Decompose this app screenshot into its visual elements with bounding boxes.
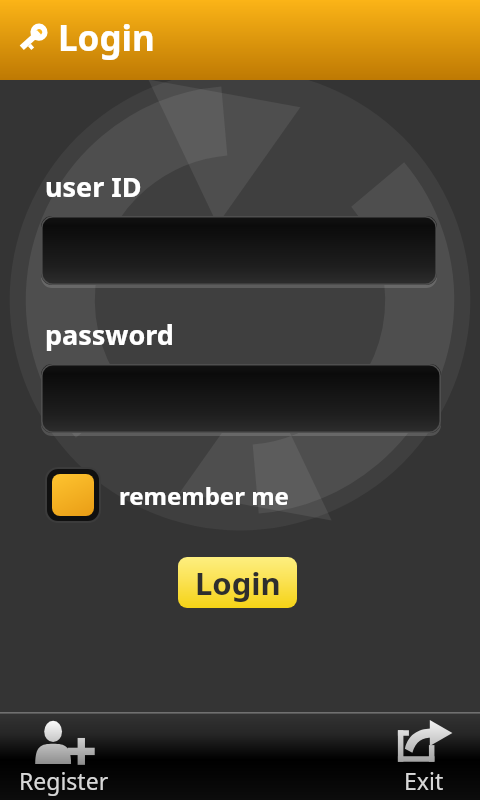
button[interactable] [41, 216, 437, 288]
staticText: Exit [404, 765, 444, 796]
staticText: Login [58, 14, 155, 62]
button[interactable]: Exit [368, 712, 480, 800]
button[interactable]: Register [0, 712, 128, 800]
other: Login [14, 21, 54, 61]
button[interactable]: remember me [45, 467, 289, 523]
staticText: Register [19, 765, 109, 796]
staticText: remember me [119, 479, 289, 512]
button[interactable] [41, 364, 441, 436]
staticText: user ID [45, 168, 142, 205]
button[interactable]: Login [178, 557, 297, 608]
staticText: password [45, 316, 174, 353]
staticText: Login [195, 562, 281, 604]
